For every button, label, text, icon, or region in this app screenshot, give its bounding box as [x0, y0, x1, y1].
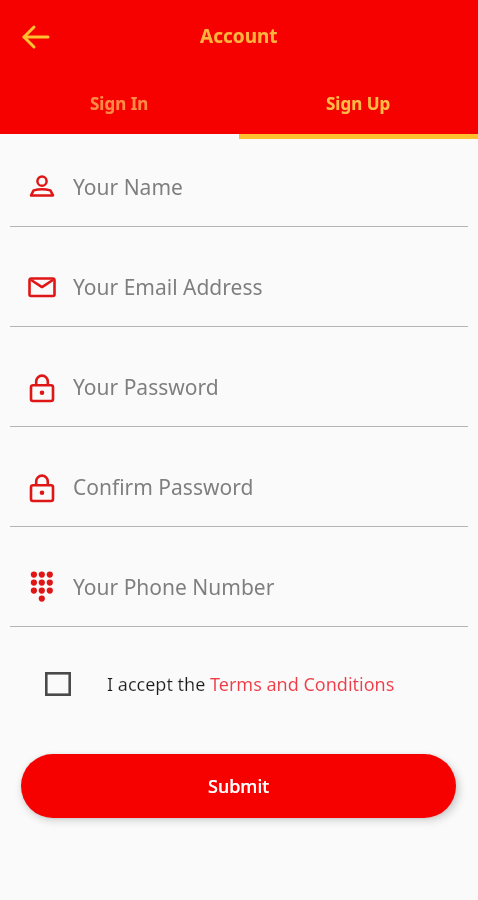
staticText: Your Name: [73, 173, 183, 202]
staticText: Your Email Address: [73, 273, 263, 302]
button[interactable]: Accept terms and conditions: [45, 672, 71, 696]
staticText: Account: [200, 23, 278, 49]
staticText: Your Password: [73, 373, 219, 402]
button[interactable]: Your Email Address: [0, 248, 478, 326]
staticText: Sign In: [90, 92, 149, 115]
button[interactable]: Submit: [21, 754, 456, 818]
button[interactable]: Back: [16, 17, 56, 57]
button[interactable]: Confirm Password: [0, 448, 478, 526]
button[interactable]: Sign In: [0, 76, 239, 134]
staticText: Sign Up: [326, 92, 391, 115]
button[interactable]: Sign Up: [239, 76, 478, 134]
button[interactable]: Your Phone Number: [0, 548, 478, 626]
button[interactable]: I accept the Terms and Conditions: [107, 672, 395, 697]
button[interactable]: Your Password: [0, 348, 478, 426]
staticText: Confirm Password: [73, 473, 254, 502]
staticText: Your Phone Number: [73, 573, 275, 602]
staticText: Submit: [208, 774, 270, 799]
button[interactable]: Your Name: [0, 148, 478, 226]
